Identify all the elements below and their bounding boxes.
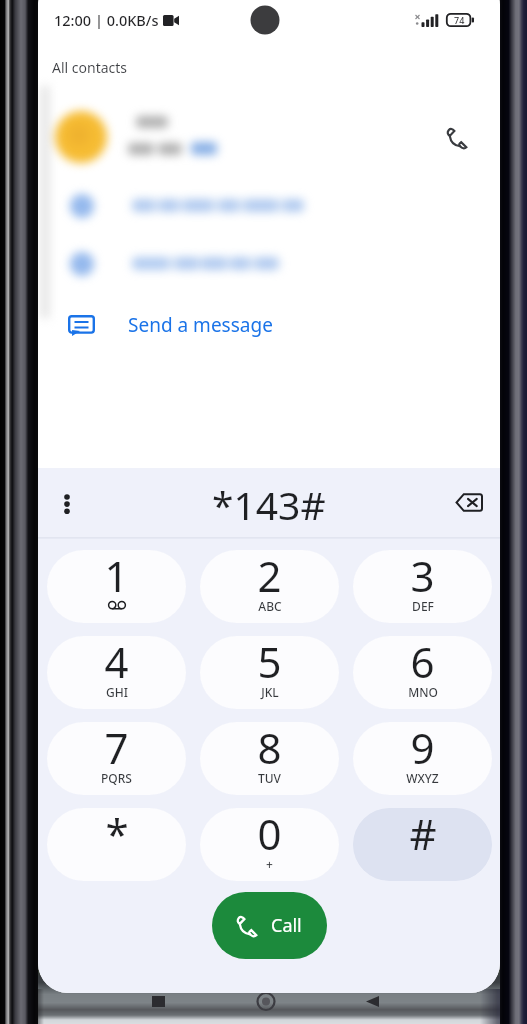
- button[interactable]: Call contact: [440, 119, 476, 155]
- staticText: 6: [410, 636, 435, 690]
- staticText: ABC: [258, 598, 282, 614]
- staticText: +: [266, 856, 273, 872]
- button[interactable]: 0: [200, 808, 339, 881]
- staticText: 2: [257, 550, 282, 604]
- staticText: 9: [410, 722, 435, 776]
- button[interactable]: 8: [200, 722, 339, 795]
- button[interactable]: *: [47, 808, 186, 881]
- staticText: 1: [104, 550, 129, 604]
- staticText: MNO: [408, 684, 438, 700]
- staticText: DEF: [412, 598, 434, 614]
- staticText: *143#: [212, 478, 326, 531]
- button[interactable]: 6: [353, 636, 492, 709]
- button[interactable]: 1: [47, 550, 186, 623]
- button[interactable]: 2: [200, 550, 339, 623]
- staticText: 3: [410, 550, 435, 604]
- staticText: 5: [257, 636, 282, 690]
- staticText: 0: [257, 808, 282, 862]
- staticText: TUV: [258, 770, 281, 786]
- button[interactable]: Send a message: [38, 303, 500, 347]
- staticText: #: [409, 808, 437, 862]
- staticText: 7: [104, 722, 129, 776]
- button[interactable]: 4: [47, 636, 186, 709]
- staticText: 12:00 | 0.0KB/s: [54, 10, 159, 30]
- button[interactable]: Call: [212, 892, 327, 959]
- staticText: 74: [454, 14, 465, 26]
- staticText: 4: [104, 636, 129, 690]
- staticText: *: [105, 808, 129, 862]
- staticText: Call: [271, 913, 302, 938]
- staticText: All contacts: [52, 58, 128, 77]
- staticText: WXYZ: [406, 770, 439, 786]
- button[interactable]: 5: [200, 636, 339, 709]
- staticText: GHI: [106, 684, 128, 700]
- button[interactable]: 3: [353, 550, 492, 623]
- staticText: 8: [257, 722, 282, 776]
- button[interactable]: More options: [52, 489, 82, 519]
- button[interactable]: 9: [353, 722, 492, 795]
- button[interactable]: Backspace: [450, 483, 488, 521]
- button[interactable]: #: [353, 808, 492, 881]
- staticText: Send a message: [128, 312, 273, 338]
- button[interactable]: 7: [47, 722, 186, 795]
- staticText: JKL: [261, 684, 279, 700]
- staticText: PQRS: [101, 770, 132, 786]
